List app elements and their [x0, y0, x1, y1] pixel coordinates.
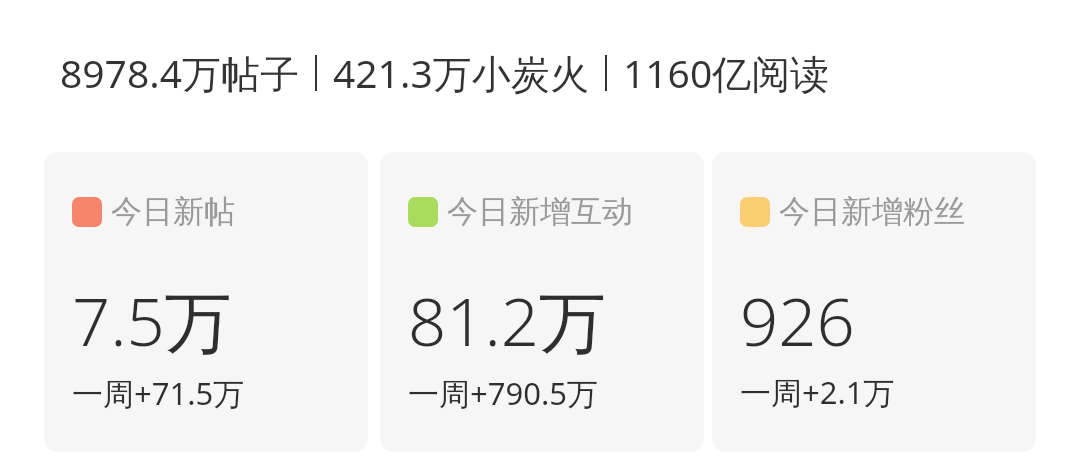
staticText: 421.3万小炭火 [333, 46, 589, 99]
staticText: 一周+790.5万 [408, 372, 598, 414]
staticText: 一周+71.5万 [72, 372, 245, 414]
staticText: 今日新增互动 [447, 192, 633, 231]
staticText: 一周+2.1万 [740, 371, 895, 413]
staticText: 1160亿阅读 [623, 46, 830, 99]
button[interactable]: 今日新帖 [44, 152, 368, 452]
staticText: 81.2万 [408, 274, 607, 366]
staticText: 926 [740, 274, 855, 365]
button[interactable]: 今日新增互动 [380, 152, 704, 452]
button[interactable]: 今日新增粉丝 [712, 152, 1036, 452]
staticText: 7.5万 [72, 274, 232, 366]
staticText: 8978.4万帖子 [60, 46, 299, 99]
staticText: 今日新帖 [111, 192, 235, 231]
staticText: 今日新增粉丝 [779, 192, 965, 231]
button[interactable]: 8978.4万帖子 [60, 46, 830, 99]
